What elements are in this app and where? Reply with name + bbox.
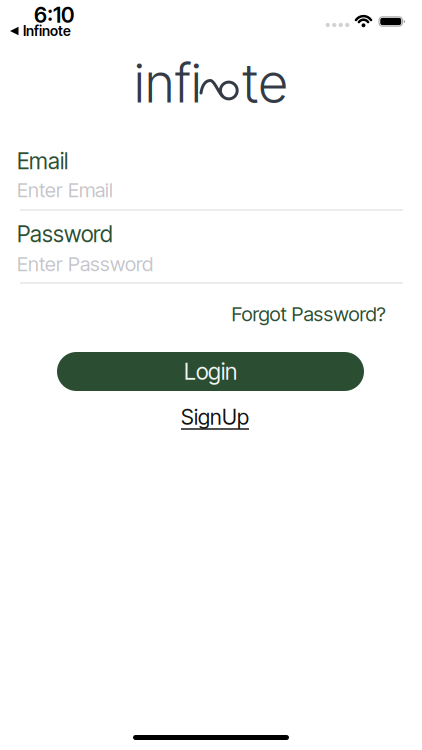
button[interactable]: Enter Email xyxy=(17,177,405,203)
staticText: Login xyxy=(184,358,237,385)
button[interactable]: Enter Password xyxy=(17,251,405,277)
staticText: Infinote xyxy=(23,22,71,39)
staticText: Forgot Password? xyxy=(231,302,385,326)
staticText: SignUp xyxy=(181,404,249,430)
staticText: Enter Email xyxy=(17,178,113,202)
button[interactable]: Login xyxy=(57,352,364,391)
button[interactable]: Infinote xyxy=(9,22,71,39)
staticText: Enter Password xyxy=(17,252,153,276)
button[interactable]: Forgot Password? xyxy=(231,302,385,326)
button[interactable]: SignUp xyxy=(181,404,249,430)
staticText: Password xyxy=(17,220,113,248)
staticText: Email xyxy=(17,147,68,175)
staticText: infi xyxy=(134,51,202,115)
staticText: te xyxy=(241,51,287,115)
staticText: 6:10 xyxy=(34,2,74,28)
